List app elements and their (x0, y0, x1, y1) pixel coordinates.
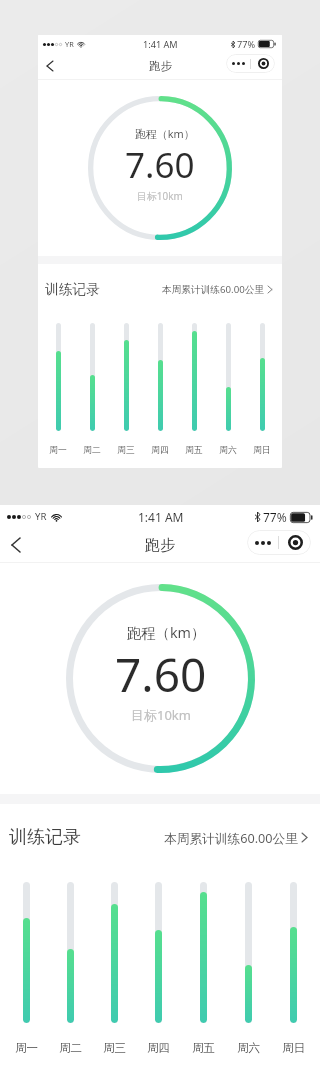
staticText: 周六 (237, 1041, 260, 1055)
staticText: 周三 (103, 1041, 126, 1055)
staticText: 周日 (253, 445, 271, 456)
staticText: 周一 (49, 445, 67, 456)
staticText: 跑步 (149, 59, 172, 73)
staticText: 目标10km (131, 706, 191, 724)
staticText: 训练记录 (45, 281, 100, 298)
staticText: 目标10km (137, 189, 183, 203)
staticText: YR (65, 39, 74, 49)
staticText: 周二 (59, 1041, 82, 1055)
button[interactable]: Back (38, 54, 62, 78)
staticText: 7.60 (125, 141, 195, 189)
staticText: 77% (237, 38, 256, 50)
staticText: 跑程（km） (135, 126, 195, 141)
button[interactable]: 本周累计训练60.00公里 (162, 283, 272, 296)
staticText: 周日 (282, 1041, 305, 1055)
button[interactable]: More options (247, 530, 311, 555)
staticText: 周四 (147, 1041, 170, 1055)
staticText: 周六 (219, 445, 237, 456)
staticText: 跑步 (145, 536, 175, 555)
staticText: 训练记录 (9, 826, 81, 849)
staticText: 周五 (185, 445, 203, 456)
button[interactable]: More options (226, 54, 275, 73)
staticText: 1:41 AM (138, 509, 184, 525)
staticText: 周四 (151, 445, 169, 456)
staticText: 跑程（km） (127, 623, 206, 643)
button[interactable]: 本周累计训练60.00公里 (164, 829, 307, 846)
staticText: 周二 (83, 445, 101, 456)
staticText: 周一 (15, 1041, 38, 1055)
staticText: YR (35, 510, 47, 523)
staticText: 本周累计训练60.00公里 (162, 283, 265, 296)
staticText: 1:41 AM (143, 38, 178, 50)
staticText: 周三 (117, 445, 135, 456)
staticText: 周五 (192, 1041, 215, 1055)
staticText: 7.60 (115, 643, 207, 706)
staticText: 本周累计训练60.00公里 (164, 829, 298, 846)
staticText: 77% (263, 509, 287, 525)
button[interactable]: Back (0, 529, 32, 561)
